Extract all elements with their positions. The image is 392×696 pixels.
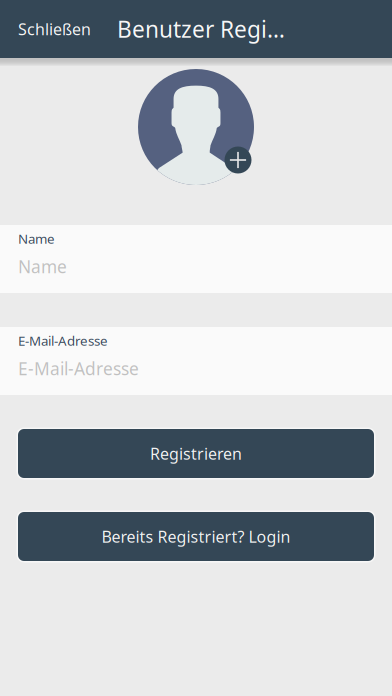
staticText: E-Mail-Adresse bbox=[18, 357, 139, 380]
button[interactable]: E-Mail-Adresse bbox=[0, 327, 392, 395]
button[interactable]: Name bbox=[0, 225, 392, 293]
button[interactable]: Bereits Registriert? Login bbox=[0, 512, 392, 561]
button[interactable]: Registrieren bbox=[0, 429, 392, 478]
staticText: Name bbox=[18, 230, 55, 247]
button[interactable]: Schließen bbox=[0, 0, 109, 58]
staticText: Name bbox=[18, 255, 67, 278]
staticText: Schließen bbox=[18, 18, 91, 40]
staticText: E-Mail-Adresse bbox=[18, 332, 108, 349]
staticText: Registrieren bbox=[150, 443, 242, 464]
staticText: Bereits Registriert? Login bbox=[101, 526, 290, 547]
staticText: Benutzer Regi… bbox=[117, 14, 285, 44]
